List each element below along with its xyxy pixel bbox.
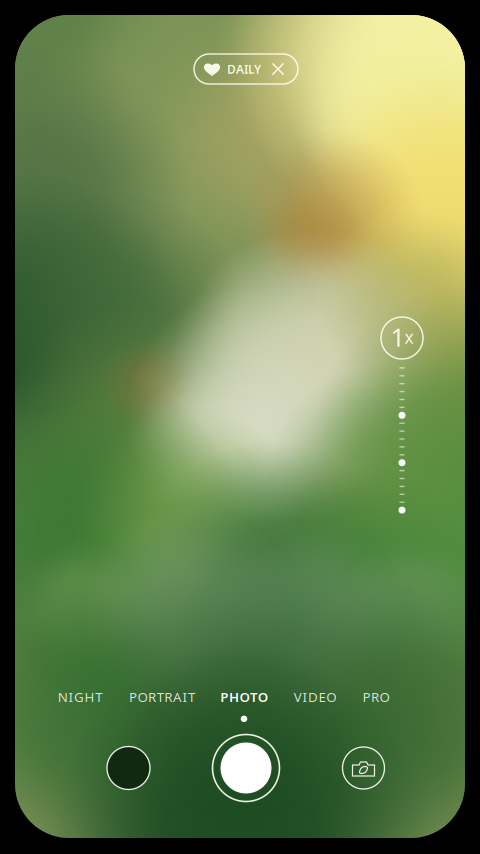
button[interactable]: PORTRAIT — [124, 692, 200, 718]
staticText: PORTRAIT — [129, 688, 195, 706]
staticText: NIGHT — [58, 688, 102, 706]
button[interactable]: Zoom 1x — [380, 316, 424, 360]
staticText: VIDEO — [294, 688, 336, 706]
button[interactable]: DAILY — [194, 54, 298, 84]
staticText: DAILY — [227, 61, 261, 77]
staticText: 1 — [390, 320, 404, 354]
button[interactable]: Shutter — [211, 733, 281, 803]
button[interactable]: PHOTO — [212, 692, 276, 718]
staticText: x — [404, 325, 413, 348]
button[interactable]: Switch camera — [342, 746, 385, 789]
staticText: PRO — [362, 688, 390, 706]
button[interactable]: PRO — [355, 692, 397, 718]
button[interactable]: VIDEO — [287, 692, 343, 718]
button[interactable]: NIGHT — [50, 692, 110, 718]
staticText: PHOTO — [220, 688, 268, 706]
button[interactable]: Photo library — [107, 746, 150, 789]
